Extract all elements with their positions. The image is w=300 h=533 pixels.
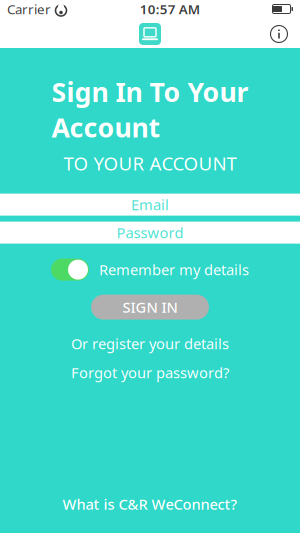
staticText: Carrier	[7, 0, 51, 18]
staticText: SIGN IN	[122, 297, 177, 317]
button[interactable]: Forgot your password?	[71, 365, 229, 381]
staticText: Remember my details	[99, 260, 249, 279]
staticText: Sign In To Your Account	[51, 74, 248, 145]
staticText: 10:57 AM	[140, 0, 200, 18]
staticText: Email	[131, 195, 169, 214]
staticText: What is C&R WeConnect?	[62, 494, 237, 514]
staticText: TO YOUR ACCOUNT	[63, 151, 236, 176]
button[interactable]: WeConnect	[139, 23, 161, 45]
button[interactable]: What is C&R WeConnect?	[62, 495, 237, 513]
staticText: Password	[116, 223, 183, 242]
staticText: Forgot your password?	[71, 363, 229, 382]
staticText: Or register your details	[71, 334, 229, 353]
button[interactable]: Remember my details	[51, 259, 249, 281]
button[interactable]: SIGN IN	[91, 295, 209, 320]
button[interactable]: Information	[264, 20, 294, 48]
button[interactable]: Password	[0, 222, 300, 244]
button[interactable]: Or register your details	[71, 336, 229, 352]
button[interactable]: Email	[0, 194, 300, 216]
